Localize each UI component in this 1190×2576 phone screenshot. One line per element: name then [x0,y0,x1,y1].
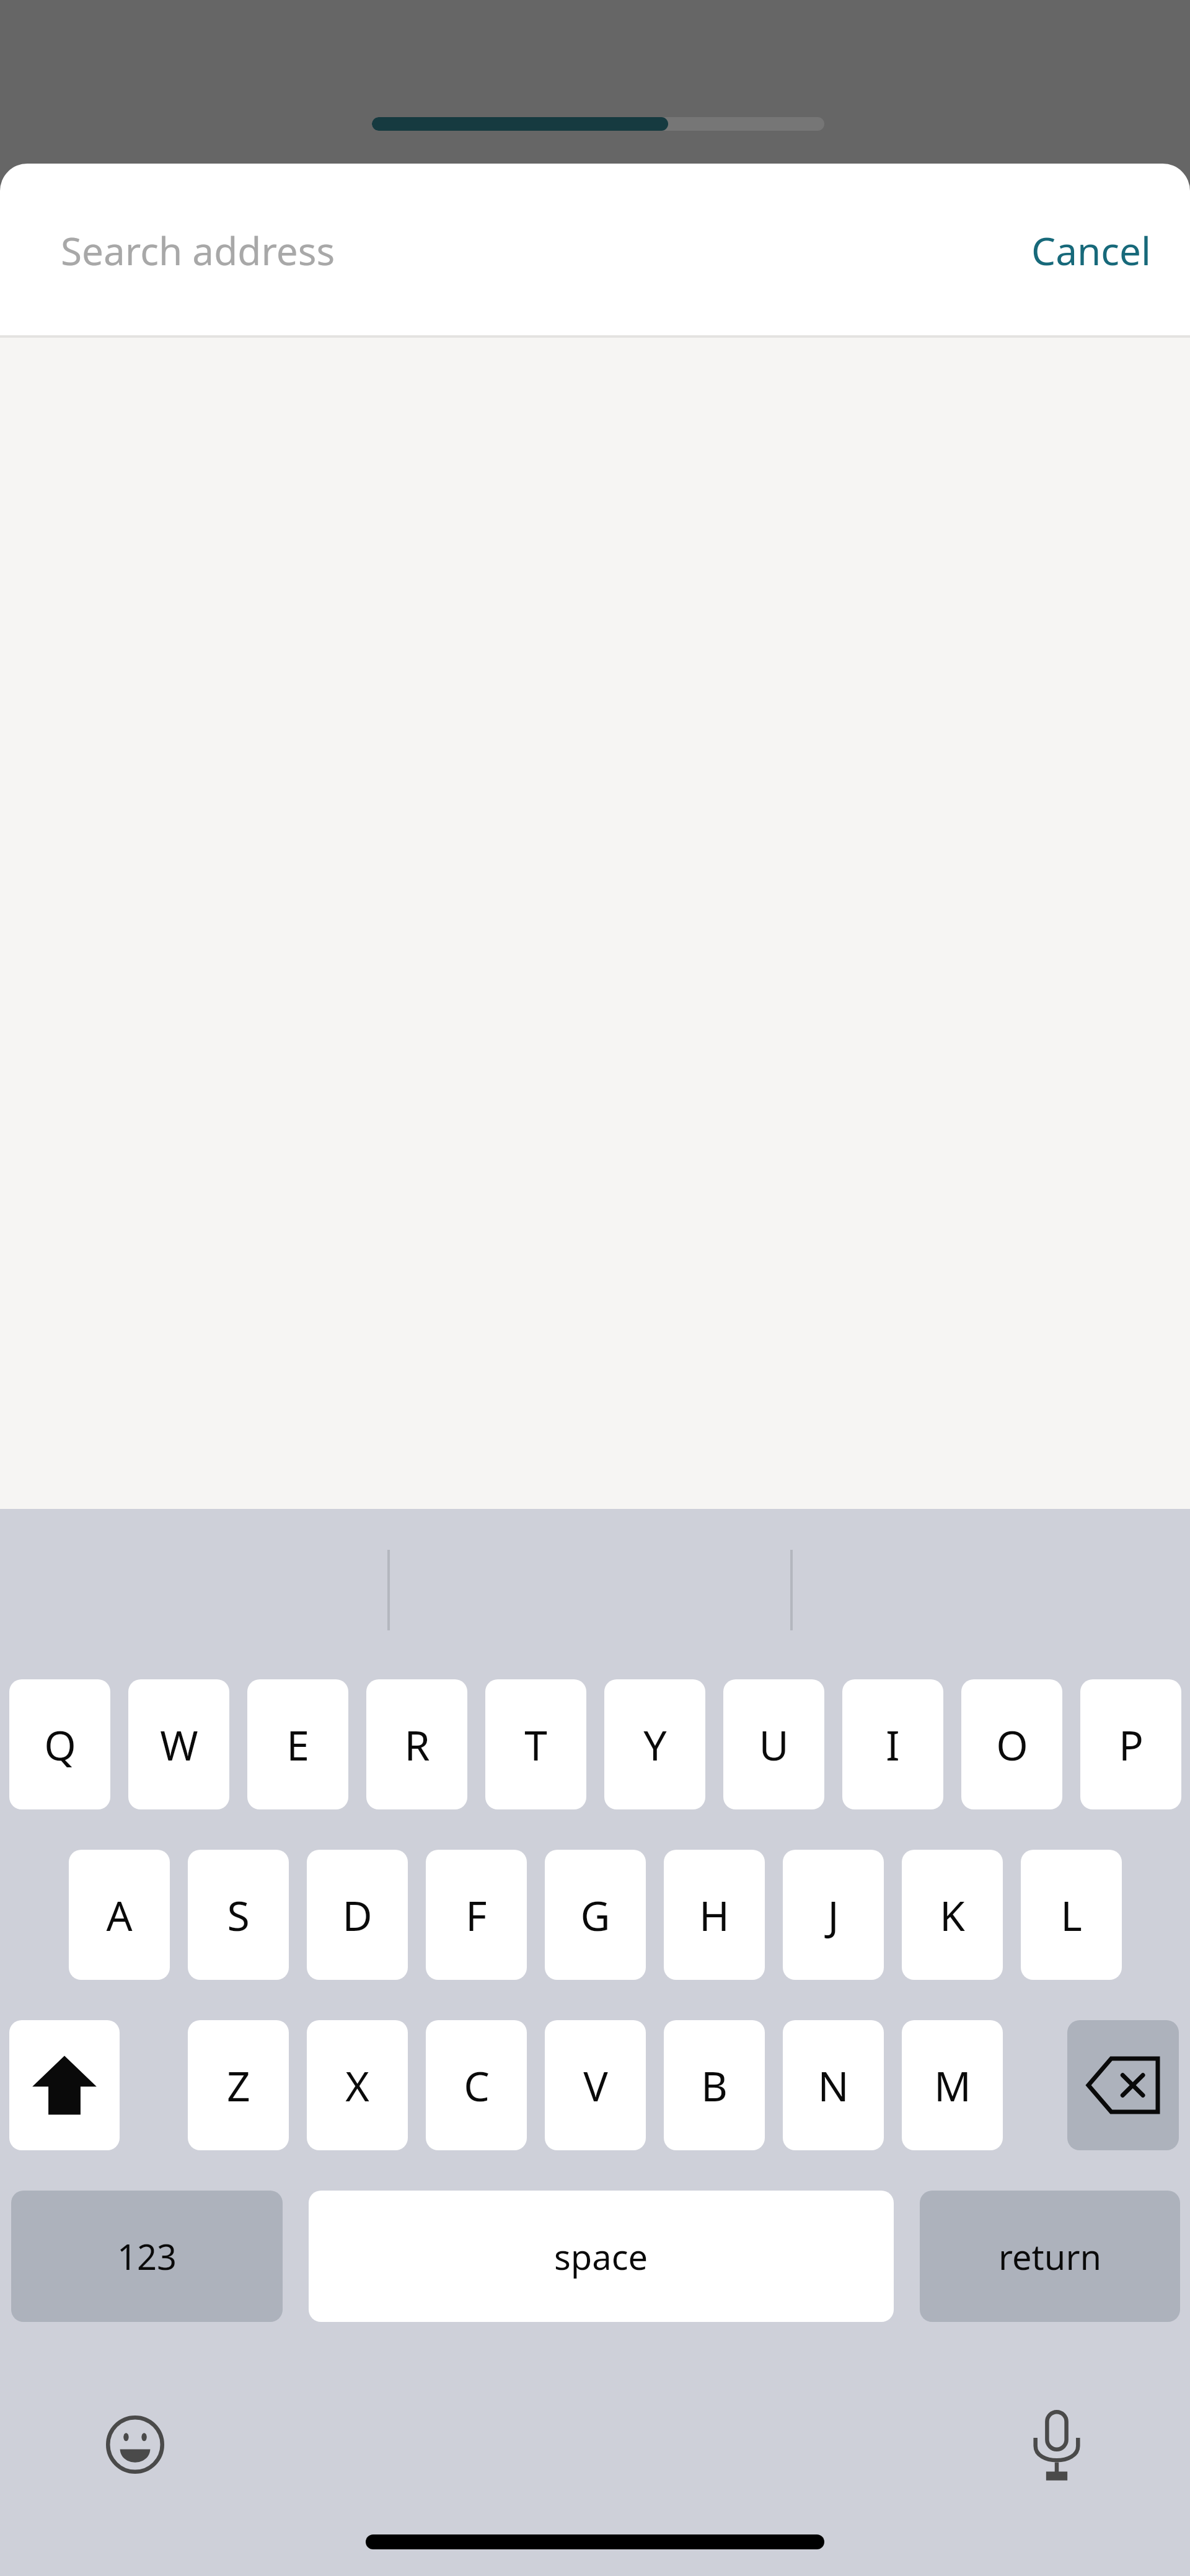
staticText: O [996,1717,1028,1772]
button[interactable]: R [366,1679,467,1809]
staticText: C [464,2057,490,2113]
button[interactable]: K [902,1850,1003,1980]
staticText: N [818,2057,849,2113]
button[interactable]: I [842,1679,943,1809]
button[interactable]: return [920,2191,1180,2322]
staticText: B [701,2057,728,2113]
staticText: Z [227,2057,250,2113]
button[interactable]: W [128,1679,229,1809]
staticText: space [554,2233,648,2280]
button[interactable]: N [783,2020,884,2150]
button[interactable]: Search address [61,224,1023,276]
staticText: U [759,1717,789,1772]
staticText: T [524,1717,547,1772]
button[interactable]: L [1021,1850,1122,1980]
button[interactable]: Cancel [1023,213,1160,288]
staticText: J [827,1887,839,1943]
button[interactable]: T [485,1679,586,1809]
button[interactable]: C [426,2020,527,2150]
staticText: S [227,1887,250,1943]
staticText: M [934,2057,971,2113]
button[interactable]: A [69,1850,170,1980]
staticText: F [465,1887,487,1943]
staticText: Q [44,1717,76,1772]
staticText: return [998,2233,1102,2280]
button[interactable]: Y [604,1679,705,1809]
staticText: I [886,1717,900,1772]
staticText: R [404,1717,430,1772]
staticText: 123 [117,2233,177,2280]
staticText: E [286,1717,309,1772]
staticText: Cancel [1031,224,1152,276]
button[interactable]: Voice input [1013,2401,1100,2488]
staticText: X [345,2057,369,2113]
staticText: V [583,2057,608,2113]
staticText: W [160,1717,198,1772]
button[interactable]: Z [188,2020,289,2150]
staticText: D [342,1887,372,1943]
staticText: K [940,1887,965,1943]
staticText: H [699,1887,729,1943]
button[interactable]: Emoji keyboard [92,2401,178,2488]
button[interactable]: P [1080,1679,1181,1809]
button[interactable]: E [247,1679,348,1809]
staticText: Y [643,1717,667,1772]
button[interactable]: J [783,1850,884,1980]
button[interactable]: F [426,1850,527,1980]
button[interactable]: D [307,1850,408,1980]
button[interactable]: O [961,1679,1062,1809]
staticText: Search address [61,224,335,276]
button[interactable]: H [664,1850,765,1980]
button[interactable]: Shift [9,2020,120,2150]
button[interactable]: G [545,1850,646,1980]
button[interactable]: X [307,2020,408,2150]
button[interactable]: M [902,2020,1003,2150]
button[interactable]: Backspace [1067,2020,1179,2150]
button[interactable]: B [664,2020,765,2150]
staticText: G [580,1887,610,1943]
staticText: P [1119,1717,1144,1772]
button[interactable]: S [188,1850,289,1980]
button[interactable]: 123 [11,2191,283,2322]
button[interactable]: V [545,2020,646,2150]
button[interactable]: space [309,2191,894,2322]
staticText: L [1060,1887,1082,1943]
button[interactable]: U [723,1679,824,1809]
staticText: A [106,1887,133,1943]
button[interactable]: Q [9,1679,110,1809]
